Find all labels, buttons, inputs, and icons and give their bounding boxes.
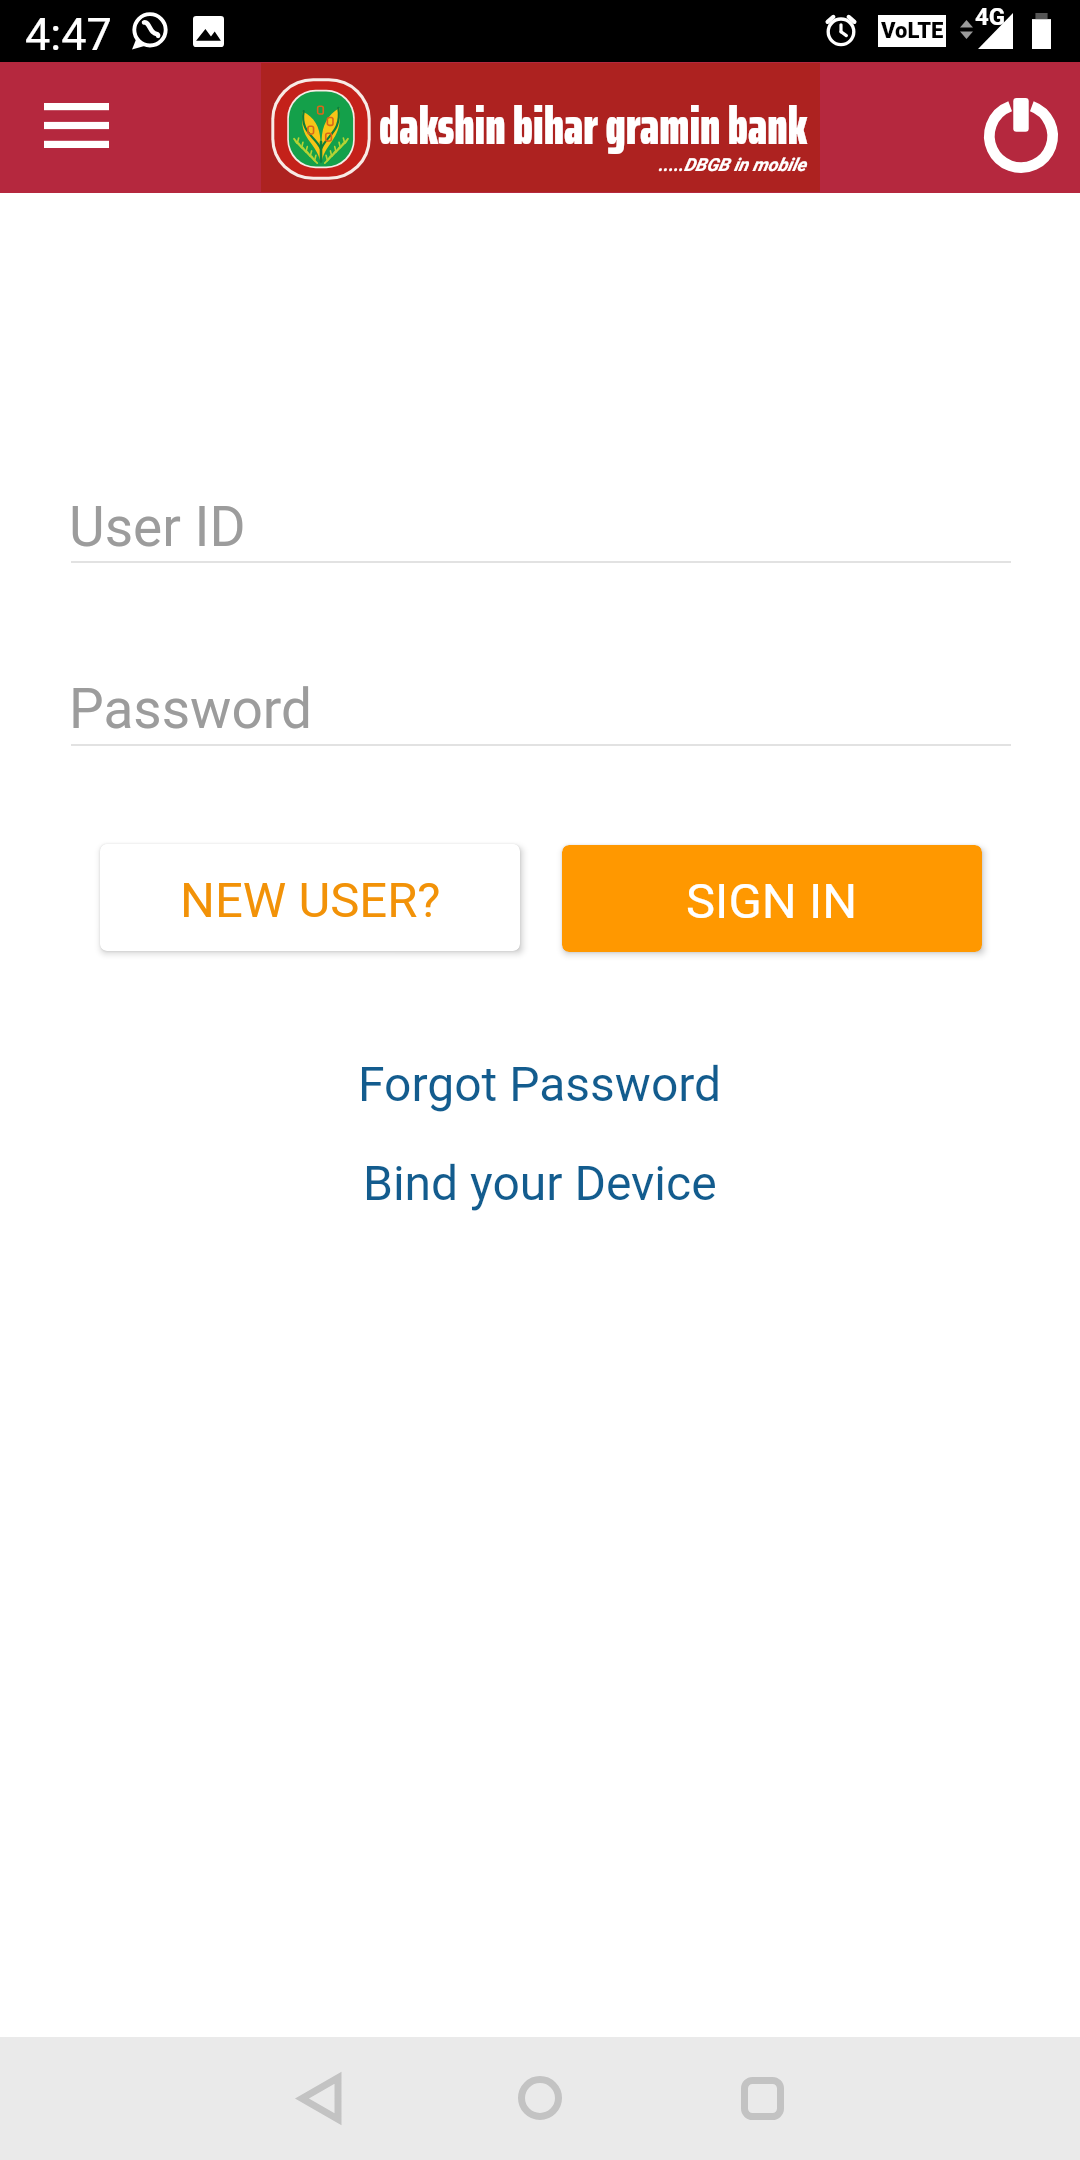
button[interactable]: Bind your Device <box>0 1150 1080 1216</box>
staticText: Bind your Device <box>363 1155 717 1211</box>
button[interactable]: Forgot Password <box>0 1051 1080 1117</box>
button[interactable]: Password <box>71 669 1011 746</box>
staticText: NEW USER? <box>180 872 441 929</box>
staticText: .....DBGB in mobile <box>261 154 806 175</box>
button[interactable]: User ID <box>71 487 1011 563</box>
button[interactable]: Recent apps <box>702 2038 822 2158</box>
button[interactable]: Logout <box>966 80 1076 190</box>
staticText: Password <box>69 677 312 741</box>
staticText: Forgot Password <box>358 1056 722 1112</box>
button[interactable]: Back <box>260 2038 380 2158</box>
button[interactable]: Home <box>480 2038 600 2158</box>
staticText: dakshin bihar gramin bank <box>379 85 808 167</box>
staticText: 4G <box>975 3 1006 31</box>
staticText: VoLTE <box>881 18 944 44</box>
button[interactable]: Open navigation menu <box>21 73 131 183</box>
staticText: 4:47 <box>25 8 112 61</box>
button[interactable]: SIGN IN <box>562 845 982 952</box>
staticText: User ID <box>69 495 246 559</box>
staticText: SIGN IN <box>686 873 858 930</box>
button[interactable]: NEW USER? <box>100 844 520 951</box>
